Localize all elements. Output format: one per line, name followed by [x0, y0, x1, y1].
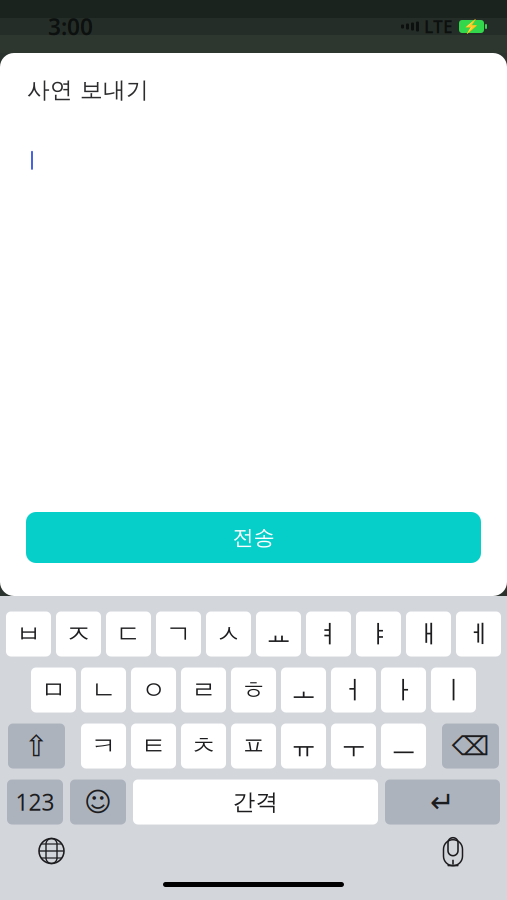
staticText: ㅌ — [141, 730, 166, 761]
staticText: ㅁ — [41, 674, 66, 705]
staticText: ㄱ — [166, 618, 191, 649]
staticText: ㅔ — [466, 618, 491, 649]
button[interactable]: ㅁ — [31, 667, 76, 712]
staticText: ㅜ — [341, 730, 366, 761]
staticText: 3:00 — [48, 11, 93, 41]
button[interactable]: ㅗ — [281, 667, 326, 712]
button[interactable]: ㅌ — [131, 723, 176, 768]
staticText: ㄹ — [191, 674, 216, 705]
staticText: ☺ — [84, 787, 112, 817]
staticText: ㅏ — [391, 674, 416, 705]
staticText: ㅣ — [441, 674, 466, 705]
staticText: ㅡ — [391, 730, 416, 761]
button[interactable]: Dictation — [439, 834, 467, 868]
button[interactable]: ㅍ — [231, 723, 276, 768]
staticText: ㅎ — [241, 674, 266, 705]
button[interactable]: Next keyboard — [38, 837, 65, 864]
button[interactable]: ㄴ — [81, 667, 126, 712]
staticText: ↵ — [430, 785, 455, 819]
button[interactable]: ㅔ — [456, 611, 501, 656]
staticText: ㄷ — [116, 618, 141, 649]
button[interactable]: ㅏ — [381, 667, 426, 712]
button[interactable]: Numbers — [7, 779, 63, 824]
button[interactable]: 간격 — [133, 779, 378, 824]
staticText: ㅐ — [416, 618, 441, 649]
button[interactable]: ㅑ — [356, 611, 401, 656]
staticText: ㅛ — [266, 618, 291, 649]
button[interactable]: ㅡ — [381, 723, 426, 768]
staticText: ⇧ — [24, 729, 49, 763]
button[interactable]: ㅅ — [206, 611, 251, 656]
staticText: 사연 보내기 — [27, 76, 149, 104]
staticText: 123 — [15, 787, 54, 817]
button[interactable]: ㄱ — [156, 611, 201, 656]
staticText: ㅑ — [366, 618, 391, 649]
button[interactable]: Return — [385, 779, 500, 824]
button[interactable]: ㅣ — [431, 667, 476, 712]
button[interactable]: 전송 — [26, 512, 481, 563]
staticText: ⌫ — [451, 731, 489, 761]
staticText: ㅋ — [91, 730, 116, 761]
button[interactable]: Delete — [442, 723, 499, 768]
staticText: ⚡ — [463, 19, 480, 34]
button[interactable]: Shift — [8, 723, 65, 768]
button[interactable]: ㅇ — [131, 667, 176, 712]
button[interactable]: ㅎ — [231, 667, 276, 712]
staticText: ㅠ — [291, 730, 316, 761]
button[interactable]: ㅈ — [56, 611, 101, 656]
button[interactable]: ㅕ — [306, 611, 351, 656]
button[interactable]: ㄷ — [106, 611, 151, 656]
button[interactable]: ㄹ — [181, 667, 226, 712]
button[interactable]: ㅐ — [406, 611, 451, 656]
button[interactable]: ㅠ — [281, 723, 326, 768]
staticText: ㅓ — [341, 674, 366, 705]
staticText: ㅗ — [291, 674, 316, 705]
button[interactable]: ㅛ — [256, 611, 301, 656]
button[interactable]: Emoji — [70, 779, 126, 824]
staticText: ㄴ — [91, 674, 116, 705]
button[interactable]: ㅓ — [331, 667, 376, 712]
button[interactable]: ㅜ — [331, 723, 376, 768]
staticText: 간격 — [232, 788, 278, 816]
staticText: ㅂ — [16, 618, 41, 649]
button[interactable]: ㅋ — [81, 723, 126, 768]
staticText: ㅊ — [191, 730, 216, 761]
staticText: ㅍ — [241, 730, 266, 761]
staticText: LTE — [424, 15, 453, 38]
staticText: ㅕ — [316, 618, 341, 649]
button[interactable]: ㅊ — [181, 723, 226, 768]
staticText: ㅇ — [141, 674, 166, 705]
staticText: ㅈ — [66, 618, 91, 649]
button[interactable]: ㅂ — [6, 611, 51, 656]
staticText: ㅅ — [216, 618, 241, 649]
staticText: 전송 — [232, 524, 274, 551]
